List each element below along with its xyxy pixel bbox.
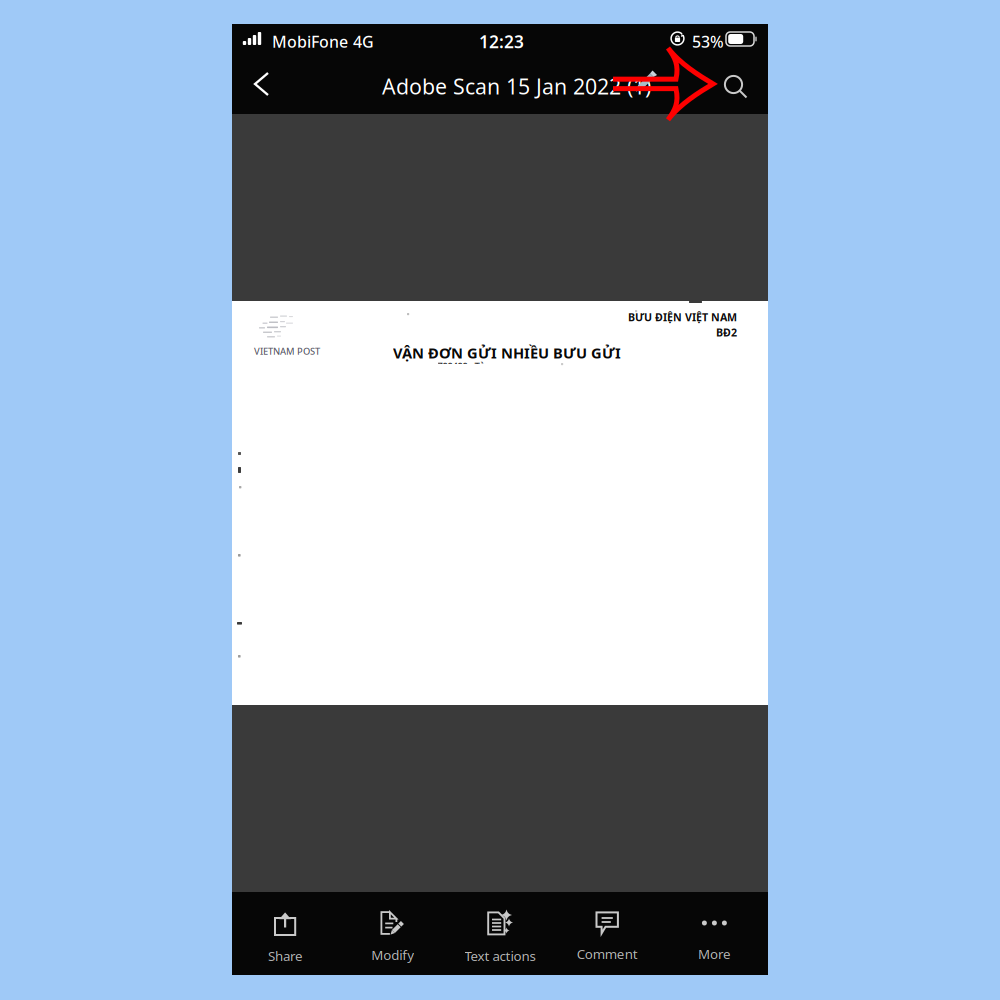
button[interactable]: Search <box>715 68 756 105</box>
button[interactable]: Comment <box>554 892 661 975</box>
staticText: MobiFone <box>272 31 348 52</box>
staticText: 700400 - Tà <box>437 359 484 371</box>
staticText: VIETNAM POST <box>254 345 320 357</box>
staticText: 12:23 <box>479 30 524 53</box>
staticText: VẬN ĐƠN GỬI NHIỀU BƯU GỬI <box>393 343 621 362</box>
staticText: More <box>698 945 731 963</box>
button[interactable]: Share <box>232 892 339 975</box>
staticText: Share <box>268 947 303 965</box>
button[interactable]: Back <box>242 60 281 108</box>
staticText: BƯU ĐIỆN VIỆT NAM <box>628 310 737 324</box>
staticText: Adobe Scan 15 Jan 2022 (1) <box>382 72 651 100</box>
staticText: 4G <box>353 31 374 52</box>
button[interactable]: More <box>661 892 768 975</box>
staticText: 53% <box>692 31 724 52</box>
staticText: BĐ2 <box>716 325 737 339</box>
button[interactable]: Text actions <box>446 892 554 975</box>
staticText: Text actions <box>464 947 535 965</box>
button[interactable]: Modify <box>339 892 446 975</box>
staticText: Modify <box>371 946 414 964</box>
staticText: Comment <box>577 945 638 963</box>
